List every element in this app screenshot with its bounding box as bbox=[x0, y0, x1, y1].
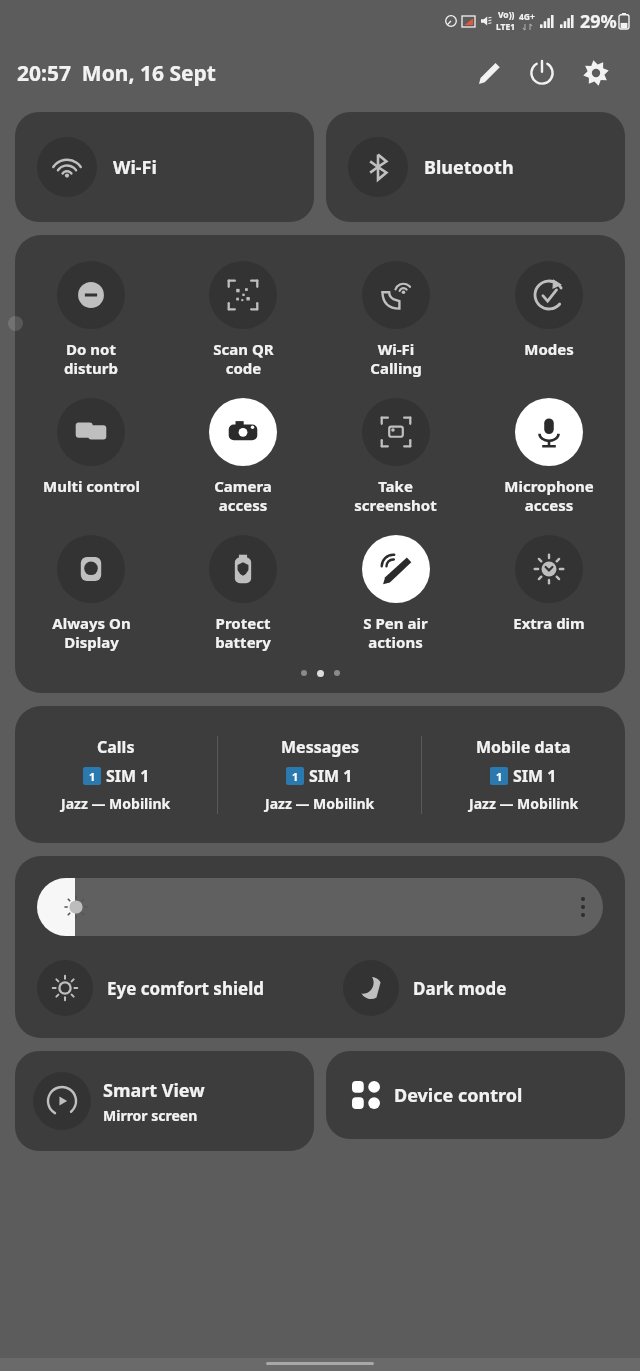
button[interactable]: S Pen air actions bbox=[319, 531, 472, 656]
staticText: 20:57 Mon, 16 Sept bbox=[17, 59, 216, 88]
button[interactable]: Take screenshot bbox=[319, 394, 472, 519]
staticText: Jazz — Mobilink bbox=[61, 794, 171, 813]
staticText: Mirror screen bbox=[103, 1106, 198, 1125]
button[interactable]: Bluetooth bbox=[326, 112, 625, 222]
staticText: 29% bbox=[580, 9, 617, 34]
button[interactable]: Wi-Fi Calling bbox=[319, 257, 472, 382]
button[interactable]: Microphone access bbox=[472, 394, 625, 519]
staticText: Calls bbox=[97, 736, 135, 758]
button[interactable]: Device control bbox=[326, 1051, 625, 1139]
staticText: 4G+ bbox=[519, 11, 535, 23]
staticText: Smart View bbox=[103, 1078, 205, 1103]
staticText: Jazz — Mobilink bbox=[265, 794, 375, 813]
staticText: SIM 1 bbox=[309, 765, 353, 787]
staticText: 1 bbox=[292, 769, 299, 784]
staticText: Multi control bbox=[43, 476, 140, 496]
button[interactable]: Calls bbox=[15, 706, 217, 843]
button[interactable]: Modes bbox=[472, 257, 625, 363]
staticText: 1 bbox=[89, 769, 96, 784]
button[interactable]: Smart View bbox=[15, 1051, 314, 1151]
button[interactable]: Multi control bbox=[15, 394, 167, 500]
staticText: SIM 1 bbox=[513, 765, 557, 787]
staticText: Microphone access bbox=[504, 476, 594, 515]
staticText: Wi-Fi bbox=[113, 155, 157, 180]
staticText: LTE1 bbox=[496, 21, 516, 33]
staticText: Extra dim bbox=[513, 613, 585, 633]
staticText: Vo)) bbox=[498, 9, 515, 21]
button[interactable]: Protect battery bbox=[167, 531, 319, 656]
staticText: S Pen air actions bbox=[363, 613, 428, 652]
button[interactable]: Do not disturb bbox=[15, 257, 167, 382]
button[interactable]: Wi-Fi bbox=[15, 112, 314, 222]
button[interactable]: Dark mode bbox=[343, 960, 603, 1016]
button[interactable]: Camera access bbox=[167, 394, 319, 519]
staticText: Mobile data bbox=[476, 736, 571, 758]
staticText: Bluetooth bbox=[424, 155, 514, 180]
button[interactable]: Power bbox=[520, 51, 564, 95]
staticText: Do not disturb bbox=[64, 339, 118, 378]
button[interactable]: Settings bbox=[574, 51, 618, 95]
staticText: Camera access bbox=[214, 476, 272, 515]
staticText: Dark mode bbox=[413, 977, 507, 1000]
button[interactable]: Always On Display bbox=[15, 531, 167, 656]
staticText: Protect battery bbox=[215, 613, 271, 652]
button[interactable]: Mobile data bbox=[422, 706, 625, 843]
staticText: Jazz — Mobilink bbox=[469, 794, 579, 813]
staticText: Eye comfort shield bbox=[107, 977, 264, 1000]
staticText: Wi-Fi Calling bbox=[370, 339, 422, 378]
staticText: Always On Display bbox=[52, 613, 131, 652]
button[interactable]: Messages bbox=[218, 706, 421, 843]
staticText: Take screenshot bbox=[354, 476, 437, 515]
button[interactable]: Extra dim bbox=[472, 531, 625, 637]
staticText: Modes bbox=[524, 339, 574, 359]
staticText: SIM 1 bbox=[106, 765, 150, 787]
button[interactable]: Edit bbox=[466, 51, 510, 95]
button[interactable]: Eye comfort shield bbox=[37, 960, 343, 1016]
button[interactable]: Brightness bbox=[37, 878, 603, 936]
staticText: Device control bbox=[394, 1083, 523, 1108]
staticText: Messages bbox=[281, 736, 359, 758]
button[interactable]: Scan QR code bbox=[167, 257, 319, 382]
staticText: Scan QR code bbox=[213, 339, 274, 378]
staticText: 1 bbox=[496, 769, 503, 784]
